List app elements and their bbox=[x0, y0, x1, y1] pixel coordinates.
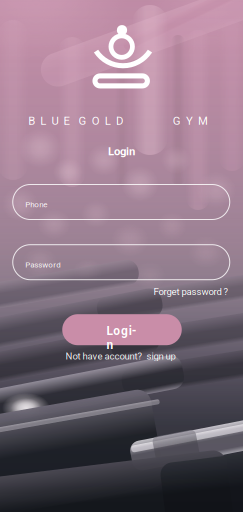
staticText: Not have account? sign up bbox=[65, 351, 175, 362]
button[interactable]: Not have account? sign up bbox=[40, 349, 200, 363]
staticText: GOLD bbox=[79, 114, 123, 127]
staticText: Forget password ? bbox=[153, 286, 228, 297]
staticText: Password bbox=[25, 260, 61, 269]
button[interactable]: Password bbox=[13, 245, 230, 280]
staticText: Phone bbox=[25, 200, 47, 209]
button[interactable]: Forget password ? bbox=[128, 285, 228, 299]
button[interactable]: Login bbox=[62, 314, 182, 345]
staticText: Login bbox=[107, 324, 139, 338]
button[interactable]: Phone bbox=[13, 184, 230, 219]
staticText: GYM bbox=[173, 114, 208, 127]
staticText: Login bbox=[108, 145, 135, 158]
staticText: BLUE bbox=[28, 114, 69, 127]
